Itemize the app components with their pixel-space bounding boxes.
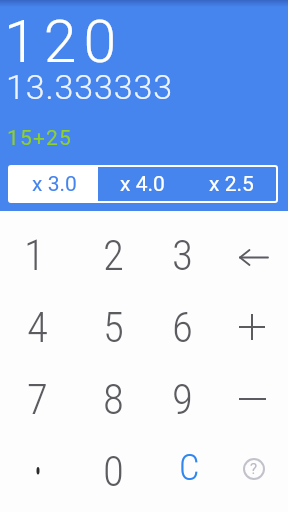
button[interactable] (216, 363, 288, 435)
staticText: 0 (103, 446, 124, 496)
staticText: 2 (103, 230, 124, 280)
button[interactable]: 4 (1, 291, 73, 363)
button[interactable]: ? (218, 433, 288, 505)
button[interactable]: C (153, 432, 225, 504)
staticText: x 2.5 (209, 172, 254, 197)
staticText: 5 (103, 302, 124, 352)
button[interactable] (2, 435, 74, 507)
staticText: 9 (172, 374, 193, 424)
staticText: 3 (172, 230, 193, 280)
button[interactable]: 3 (146, 219, 218, 291)
staticText: 13.333333 (6, 67, 174, 107)
staticText: 6 (172, 302, 193, 352)
staticText: 1 (24, 230, 45, 280)
button[interactable]: 2 (77, 219, 149, 291)
button[interactable]: x 4.0 (98, 167, 187, 201)
staticText: x 3.0 (32, 172, 77, 197)
staticText: x 4.0 (120, 172, 165, 197)
button[interactable]: x 3.0 (10, 167, 98, 201)
button[interactable]: 1 (0, 219, 70, 291)
staticText: C (179, 447, 200, 489)
button[interactable]: 8 (77, 363, 149, 435)
button[interactable]: 5 (77, 291, 149, 363)
staticText: 15+25 (7, 126, 73, 151)
staticText: ? (250, 460, 258, 478)
button[interactable]: 7 (1, 363, 73, 435)
staticText: 7 (27, 374, 48, 424)
button[interactable]: 9 (146, 363, 218, 435)
button[interactable]: 0 (77, 435, 149, 507)
staticText: 8 (103, 374, 124, 424)
staticText: 120 (4, 7, 124, 76)
button[interactable]: 6 (146, 291, 218, 363)
button[interactable]: x 2.5 (187, 167, 276, 201)
button[interactable] (216, 291, 288, 363)
staticText: 4 (27, 302, 48, 352)
button[interactable] (218, 221, 288, 293)
